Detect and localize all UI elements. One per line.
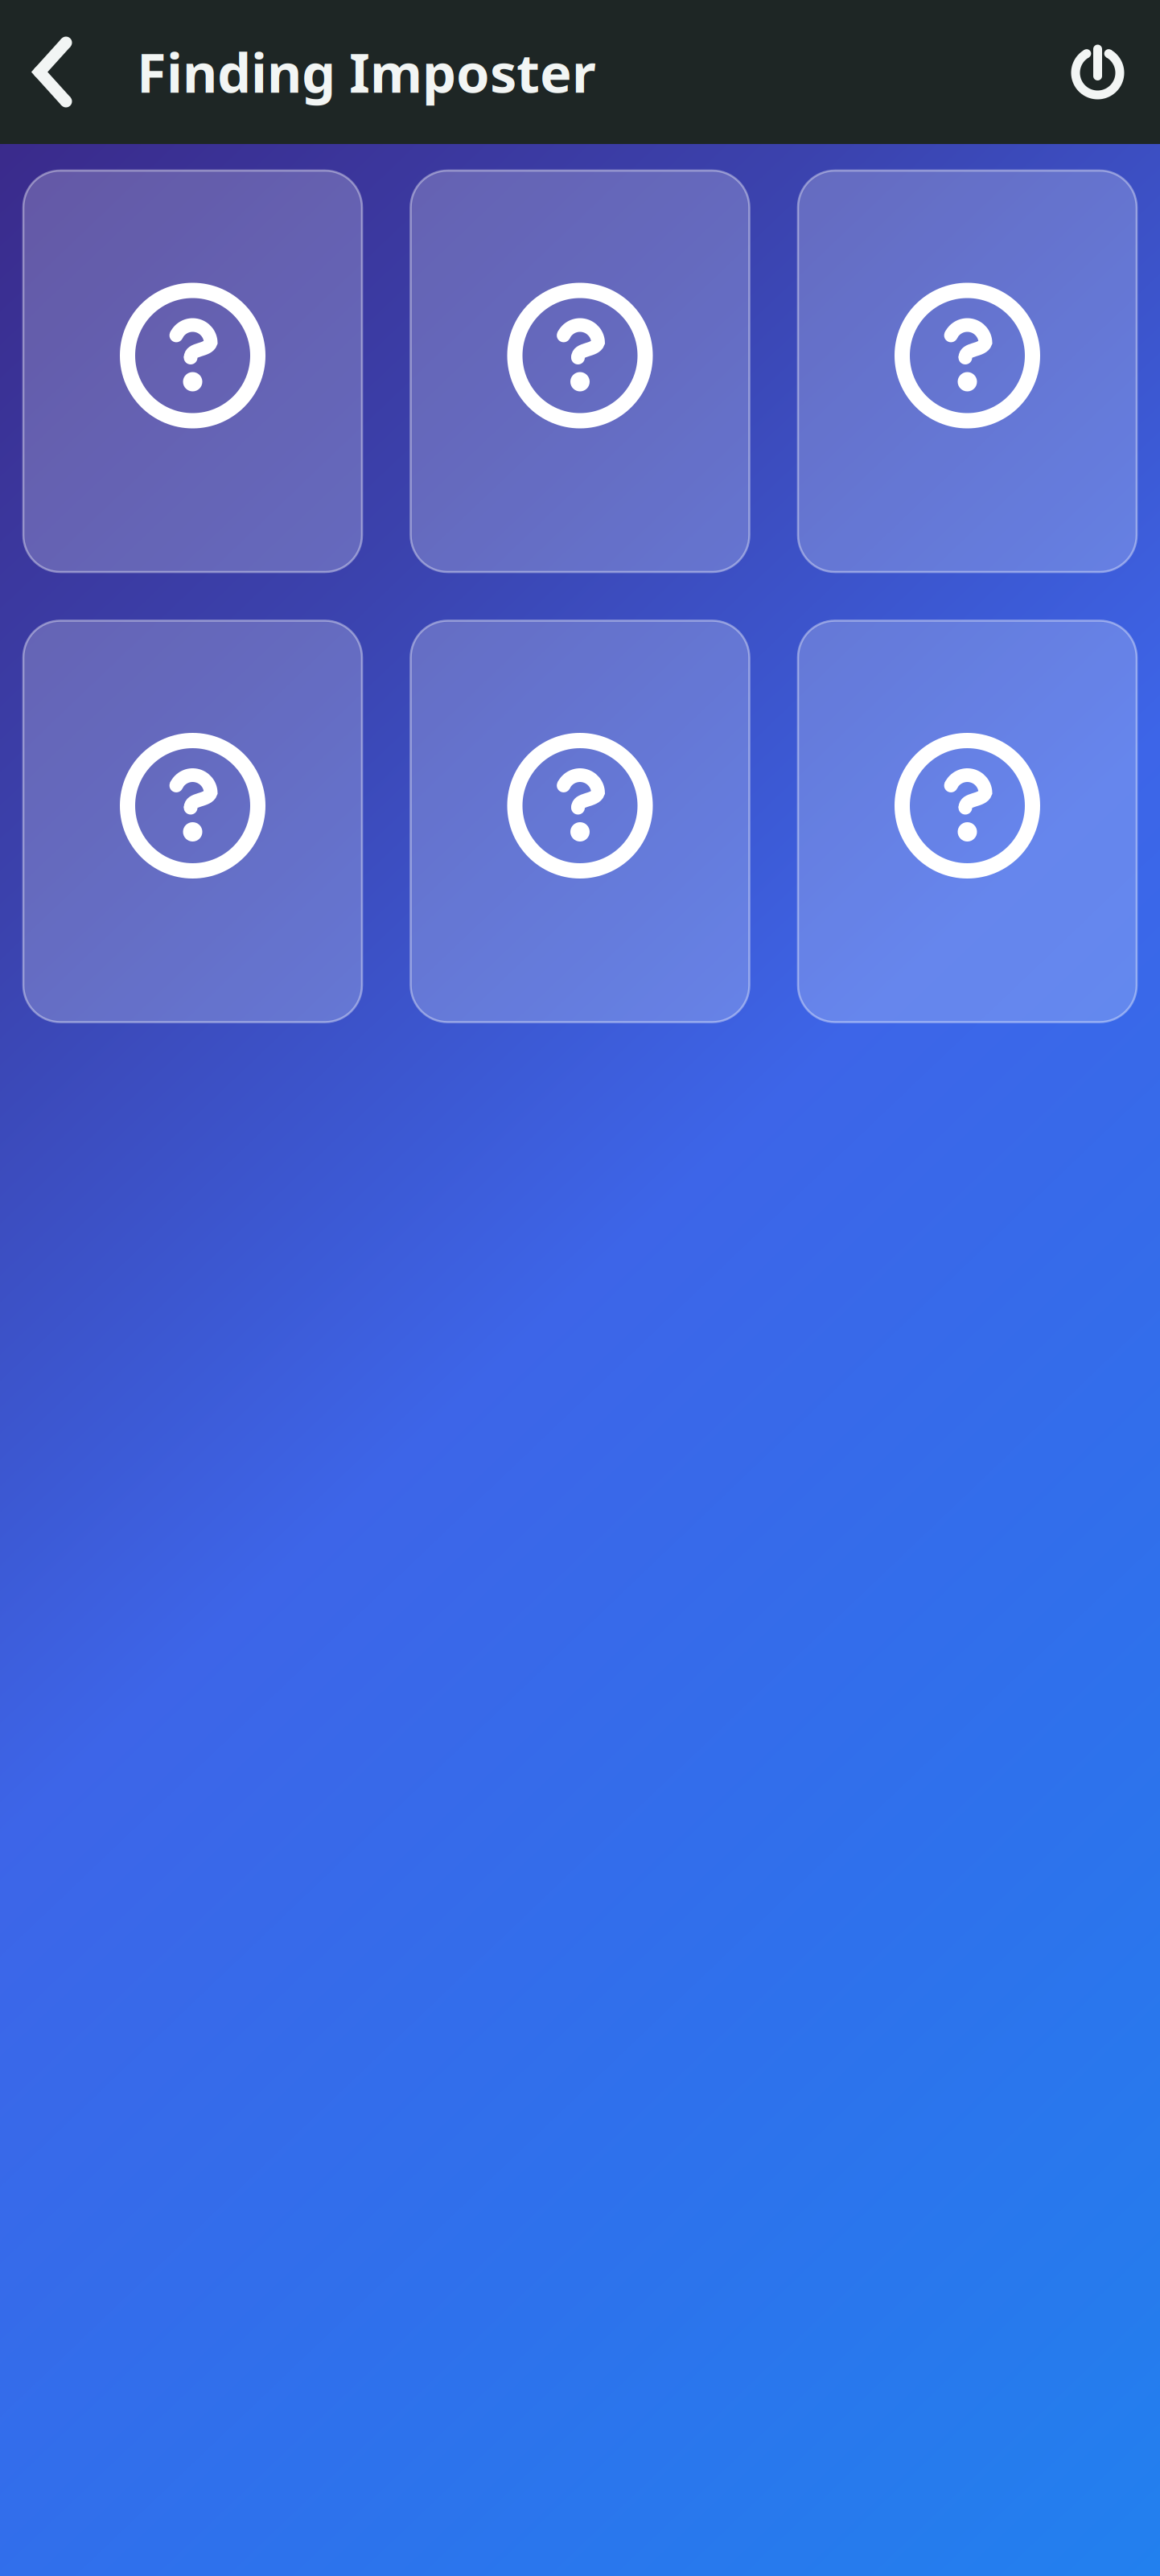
button[interactable]: Unrevealed player (798, 171, 1137, 572)
button[interactable]: Back (0, 0, 105, 144)
button[interactable]: Unrevealed player (23, 621, 362, 1022)
button[interactable]: Unrevealed player (411, 621, 749, 1022)
button[interactable]: Leave game (1035, 0, 1160, 144)
button[interactable]: Unrevealed player (798, 621, 1137, 1022)
staticText: Finding Imposter (137, 36, 596, 108)
button[interactable]: Unrevealed player (23, 171, 362, 572)
button[interactable]: Unrevealed player (411, 171, 749, 572)
